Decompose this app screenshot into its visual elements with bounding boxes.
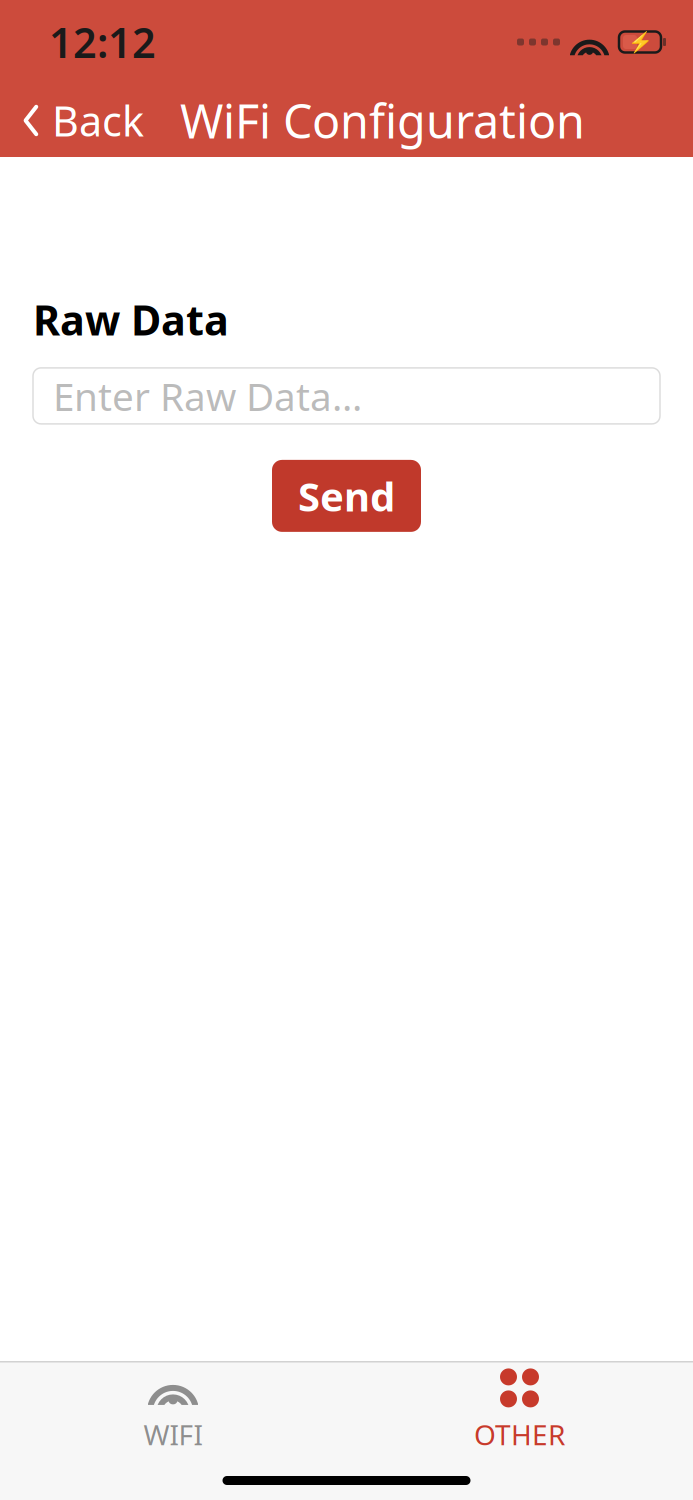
staticText: Send: [298, 469, 395, 522]
button[interactable]: OTHER: [346, 1362, 693, 1460]
staticText: Back: [52, 93, 144, 148]
staticText: WiFi Configuration: [180, 89, 585, 151]
button[interactable]: Back: [0, 84, 158, 157]
staticText: Raw Data: [33, 292, 229, 347]
staticText: ⚡: [627, 31, 652, 53]
staticText: 12:12: [49, 15, 156, 69]
staticText: Enter Raw Data...: [53, 370, 362, 421]
button[interactable]: Send: [272, 460, 421, 532]
staticText: WIFI: [143, 1416, 202, 1453]
button[interactable]: WIFI: [0, 1362, 346, 1460]
staticText: OTHER: [474, 1416, 565, 1453]
